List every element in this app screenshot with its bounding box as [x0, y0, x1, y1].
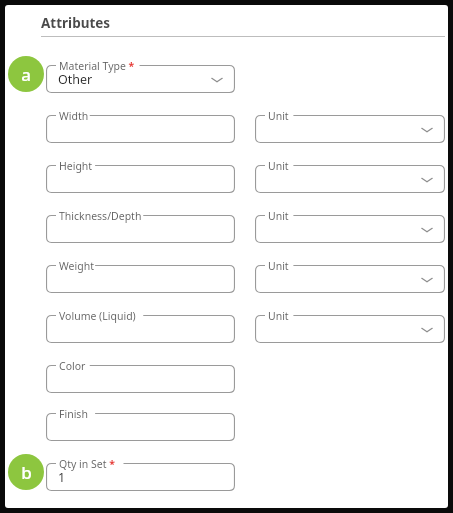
staticText: Unit — [268, 259, 289, 273]
button[interactable] — [46, 165, 235, 193]
staticText: Attributes — [41, 14, 111, 32]
button[interactable] — [46, 215, 235, 243]
button[interactable]: 1 — [46, 463, 235, 491]
staticText: Width — [59, 109, 89, 123]
staticText: Finish — [59, 407, 88, 421]
staticText: Thickness/Depth — [59, 209, 142, 223]
button[interactable]: Other — [46, 65, 235, 93]
button[interactable] — [46, 265, 235, 293]
button[interactable] — [46, 413, 235, 441]
staticText: Material Type * — [59, 59, 135, 73]
staticText: Unit — [268, 159, 289, 173]
staticText: Volume (Liquid) — [59, 309, 136, 323]
staticText: Color — [59, 359, 86, 373]
staticText: Height — [59, 159, 93, 173]
staticText: b — [21, 461, 32, 484]
button[interactable] — [46, 365, 235, 393]
button[interactable] — [255, 315, 445, 343]
staticText: Unit — [268, 209, 289, 223]
button[interactable] — [46, 115, 235, 143]
staticText: Other — [58, 71, 93, 88]
button[interactable] — [255, 165, 445, 193]
button[interactable]: Step b — [8, 454, 44, 490]
staticText: Unit — [268, 109, 289, 123]
staticText: Weight — [59, 259, 94, 273]
staticText: Qty in Set * — [59, 457, 115, 471]
button[interactable] — [255, 215, 445, 243]
button[interactable]: Step a — [8, 56, 44, 92]
button[interactable] — [46, 315, 235, 343]
staticText: Unit — [268, 309, 289, 323]
button[interactable] — [255, 265, 445, 293]
staticText: a — [21, 63, 31, 86]
button[interactable] — [255, 115, 445, 143]
staticText: 1 — [58, 469, 66, 486]
